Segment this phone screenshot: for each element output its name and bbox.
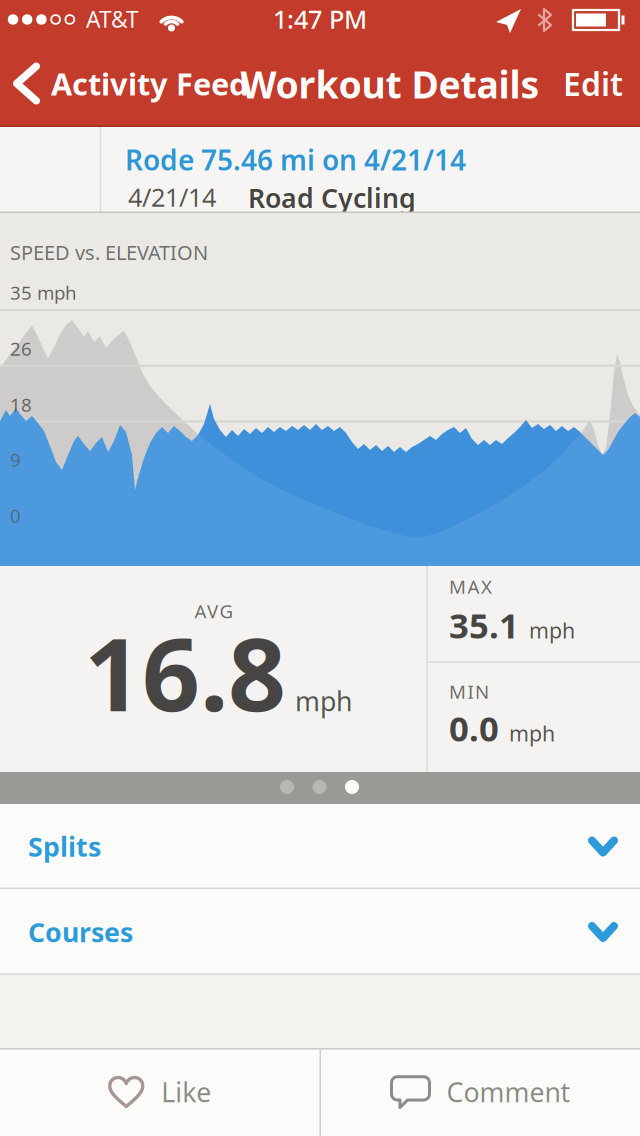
staticText: mph [509,719,555,747]
staticText: 35.1 [449,602,519,648]
button[interactable]: Rode 75.46 mi on 4/21/14 [125,141,466,178]
staticText: Workout Details [240,59,539,109]
staticText: 1:47 PM [273,2,367,36]
button[interactable]: Comment [321,1048,640,1136]
staticText: Rode 75.46 mi on 4/21/14 [125,141,466,178]
staticText: AVG [194,599,233,623]
button[interactable]: Splits [0,804,640,889]
staticText: 9 [10,447,21,472]
staticText: Splits [28,829,101,864]
button[interactable]: Edit [563,62,640,105]
button[interactable]: Like [0,1048,319,1136]
staticText: mph [295,683,352,719]
staticText: 18 [10,392,32,417]
staticText: Comment [446,1074,570,1110]
staticText: Activity Feed [51,63,248,104]
staticText: mph [529,616,575,644]
staticText: Road Cycling [248,180,416,215]
staticText: 26 [10,336,32,361]
staticText: 0 [10,503,21,528]
button[interactable]: Back to Activity Feed [0,62,248,104]
staticText: SPEED vs. ELEVATION [10,239,208,266]
staticText: AT&T [86,4,139,34]
staticText: 0.0 [449,705,499,751]
staticText: 4/21/14 [128,180,216,214]
staticText: 16.8 [84,605,286,739]
staticText: MIN [449,679,489,704]
staticText: 35 mph [10,280,77,305]
staticText: Like [161,1074,211,1110]
staticText: MAX [449,574,492,599]
staticText: Courses [28,914,133,950]
button[interactable]: Courses [0,889,640,975]
staticText: Edit [563,62,623,105]
